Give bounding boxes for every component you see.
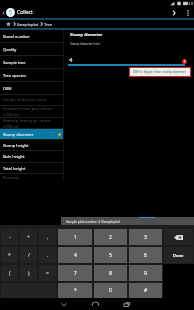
button[interactable]: Sampleplot (17, 22, 39, 27)
button[interactable]: Home (86, 298, 104, 310)
staticText: # (144, 287, 148, 294)
staticText: Height of broken stem (3, 97, 47, 103)
staticText: 9 (144, 270, 147, 277)
staticText: 4 (69, 56, 73, 64)
button[interactable]: 7 (58, 265, 92, 281)
staticText: 7 (74, 270, 77, 277)
staticText: / (28, 252, 30, 259)
button[interactable]: Back (55, 298, 73, 310)
staticText: 4:13 (186, 1, 193, 6)
button[interactable]: * (58, 283, 92, 298)
staticText: * (74, 287, 77, 294)
button[interactable]: 3 (129, 229, 162, 245)
button[interactable]: Sample plot number: 4 (Sampleplot) (61, 217, 194, 226)
staticText: + (27, 234, 30, 241)
button[interactable]: ( (1, 265, 18, 281)
staticText: DBH (3, 86, 12, 91)
button[interactable]: Remarks (0, 174, 63, 180)
staticText: 5 (109, 252, 112, 259)
button[interactable]: 9 (129, 265, 162, 281)
staticText: - (9, 234, 11, 241)
button[interactable]: ) (20, 265, 37, 281)
staticText: Done (173, 253, 184, 258)
staticText: Bole height (3, 154, 25, 159)
button[interactable]: Tree (44, 22, 53, 27)
staticText: Stand number (3, 34, 30, 39)
button[interactable]: * (1, 247, 18, 263)
button[interactable]: - (1, 229, 18, 245)
staticText: , (47, 234, 49, 241)
button[interactable]: Backspace (164, 229, 193, 245)
staticText: * (8, 252, 11, 259)
button[interactable]: 8 (94, 265, 127, 281)
button[interactable]: Bearing from plot centre (0, 118, 63, 128)
staticText: 2 (109, 234, 112, 241)
staticText: = (46, 270, 49, 277)
button[interactable]: Distance from plot centre (0, 106, 63, 117)
button[interactable]: = (39, 265, 56, 281)
staticText: Stump diameter (70, 32, 103, 37)
button[interactable]: Stump diameter (0, 129, 63, 139)
button[interactable]: 1 (58, 229, 92, 245)
button[interactable]: 2 (94, 229, 127, 245)
button[interactable]: . (39, 247, 56, 263)
staticText: 8 (109, 270, 112, 277)
button[interactable]: Home (4, 20, 12, 28)
button[interactable]: Tree species (0, 69, 63, 81)
staticText: Stump diameter (3, 132, 34, 137)
button[interactable]: Stump height (0, 140, 63, 150)
button[interactable]: Navigate up (0, 7, 6, 18)
button[interactable]: 4 (58, 247, 92, 263)
staticText: (+900 cm) (3, 124, 19, 128)
button[interactable]: Height of broken stem (0, 95, 63, 105)
staticText: Sample plot number: 4 (Sampleplot) (66, 220, 120, 224)
button[interactable]: 0 (94, 283, 127, 298)
staticText: 0 (109, 287, 112, 294)
staticText: 6 (144, 252, 147, 259)
button[interactable]: Done (164, 247, 193, 263)
staticText: 4 (74, 252, 77, 259)
staticText: (+900 cm) (3, 112, 19, 117)
staticText: . (47, 252, 49, 259)
button[interactable]: Stand number (0, 30, 63, 42)
button[interactable]: Next (167, 7, 181, 18)
staticText: Tree species (3, 73, 26, 78)
button[interactable]: More options (181, 7, 194, 18)
staticText: Stump height (3, 143, 29, 148)
staticText: Remarks (3, 175, 20, 180)
button[interactable]: + (20, 229, 37, 245)
staticText: Quality (3, 47, 17, 52)
staticText: Sample tree (3, 60, 26, 65)
staticText: Distance from plot centre (3, 106, 53, 112)
staticText: ) (28, 270, 30, 277)
button[interactable]: # (129, 283, 162, 298)
staticText: Total height (3, 166, 26, 171)
staticText: 3 (144, 234, 147, 241)
button[interactable]: Total height (0, 163, 63, 173)
button[interactable]: , (39, 229, 56, 245)
button[interactable]: Bole height (0, 151, 63, 162)
button[interactable]: DBH (0, 82, 63, 94)
button[interactable]: / (20, 247, 37, 263)
button[interactable]: 6 (129, 247, 162, 263)
staticText: Bearing from plot centre (3, 118, 52, 124)
staticText: Collect (17, 9, 33, 16)
staticText: DBH is bigger than stump diameter (133, 70, 187, 74)
staticText: 1 (74, 234, 77, 241)
staticText: Stump diameter (cm) (70, 42, 100, 46)
staticText: ! (184, 60, 185, 64)
button[interactable]: Quality (0, 43, 63, 55)
button[interactable]: 5 (94, 247, 127, 263)
button[interactable]: Sample tree (0, 56, 63, 68)
staticText: ( (9, 270, 11, 277)
button[interactable]: Recent apps (118, 298, 136, 310)
